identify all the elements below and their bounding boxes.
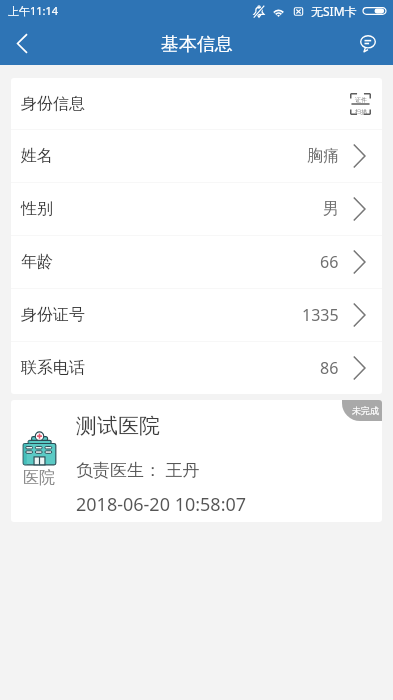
staticText: 基本信息 xyxy=(161,33,233,56)
staticText: 86 xyxy=(320,357,339,379)
button[interactable]: 身份证号 xyxy=(11,289,382,341)
button[interactable]: Scan ID card xyxy=(347,91,373,117)
button[interactable]: 医院 xyxy=(11,400,382,522)
staticText: 身份证号 xyxy=(21,305,85,325)
staticText: 医院 xyxy=(23,468,55,488)
button[interactable]: 姓名 xyxy=(11,130,382,182)
button[interactable]: Messages xyxy=(349,21,393,65)
staticText: 性别 xyxy=(21,199,53,219)
button[interactable]: 联系电话 xyxy=(11,342,382,394)
staticText: 胸痛 xyxy=(307,146,339,166)
staticText: 年龄 xyxy=(21,252,53,272)
staticText: 负责医生： 王丹 xyxy=(76,458,200,481)
staticText: 1335 xyxy=(302,304,339,326)
button[interactable]: 身份信息 xyxy=(11,78,382,129)
staticText: 证件 xyxy=(355,96,367,104)
staticText: 扫描 xyxy=(355,108,367,115)
staticText: 男 xyxy=(323,199,339,219)
button[interactable]: Back xyxy=(0,21,44,65)
button[interactable]: 年龄 xyxy=(11,236,382,288)
staticText: 66 xyxy=(320,251,339,273)
staticText: 2018-06-20 10:58:07 xyxy=(76,492,247,517)
staticText: 身份信息 xyxy=(21,94,85,114)
staticText: 上午11:14 xyxy=(8,3,59,18)
staticText: 未完成 xyxy=(352,405,379,416)
button[interactable]: 性别 xyxy=(11,183,382,235)
staticText: 测试医院 xyxy=(76,413,160,439)
staticText: 姓名 xyxy=(21,146,53,166)
staticText: 联系电话 xyxy=(21,358,85,378)
staticText: 无SIM卡 xyxy=(311,3,357,19)
